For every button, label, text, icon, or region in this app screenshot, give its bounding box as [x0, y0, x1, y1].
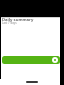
staticText: Last 7 days — [2, 21, 17, 25]
staticText: Daily summary — [2, 17, 34, 23]
button[interactable]: Continue — [2, 56, 60, 64]
other: Continue — [52, 57, 58, 63]
